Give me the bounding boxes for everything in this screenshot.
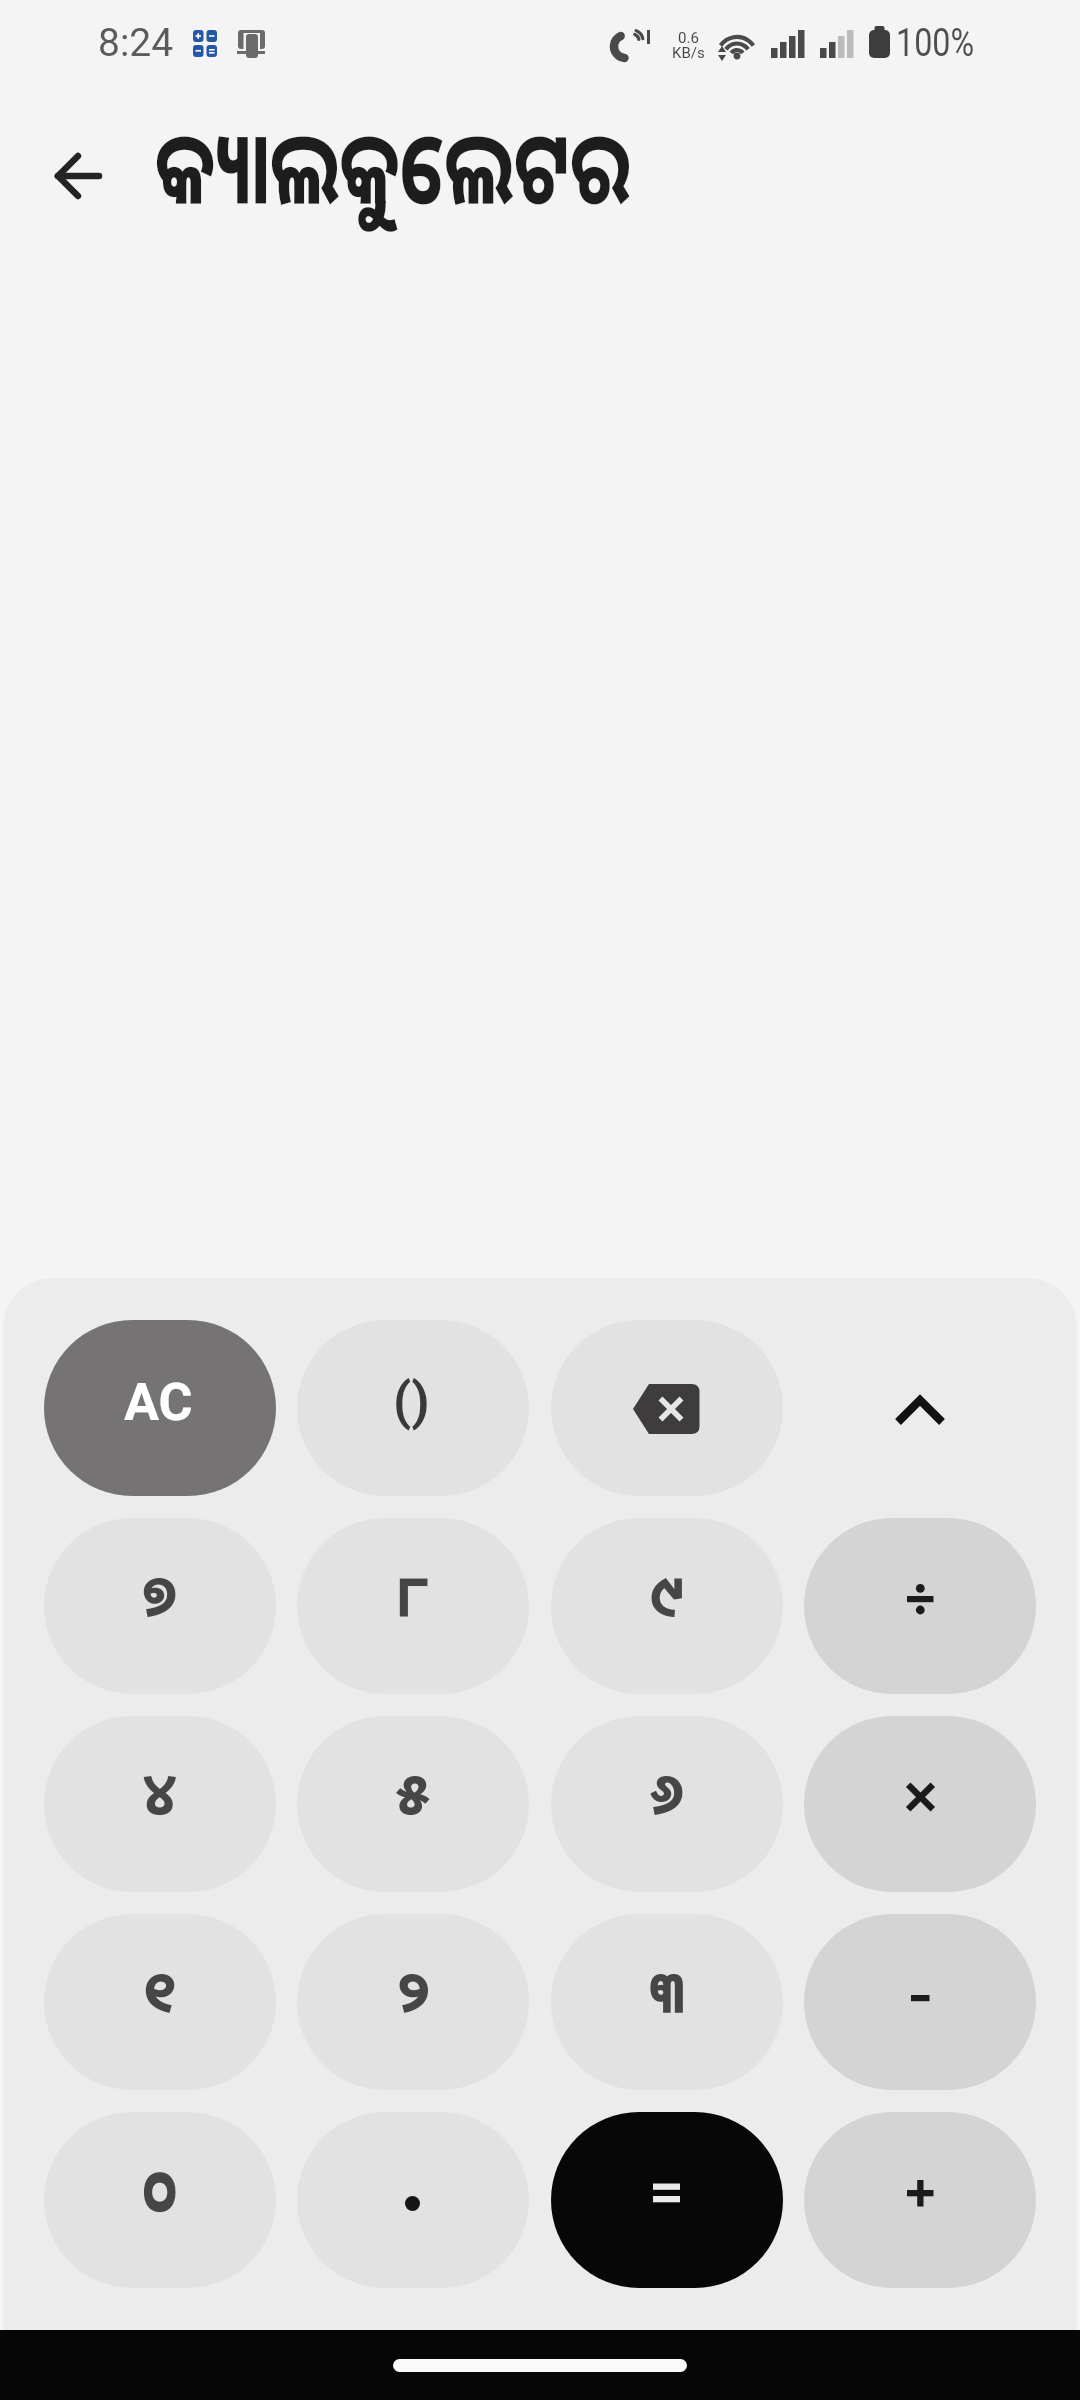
button[interactable]	[44, 1914, 276, 2090]
staticText: ୩	[650, 1956, 684, 2035]
staticText: ୬	[650, 1758, 684, 1837]
staticText: ୫	[396, 1758, 430, 1837]
button[interactable]	[551, 1716, 783, 1892]
button[interactable]	[804, 1518, 1036, 1694]
staticText: 0.6	[678, 29, 699, 44]
staticText: AC	[124, 1372, 193, 1433]
staticText: ୪	[143, 1758, 177, 1837]
button[interactable]	[804, 1320, 1036, 1496]
staticText: ୯	[650, 1560, 684, 1639]
staticText: ୭	[143, 1560, 177, 1639]
button[interactable]	[44, 2112, 276, 2288]
staticText: ୮	[396, 1560, 430, 1639]
staticText: ()	[393, 1371, 430, 1432]
button[interactable]	[297, 2112, 529, 2288]
staticText: ୧	[143, 1956, 177, 2035]
button[interactable]	[551, 1914, 783, 2090]
button[interactable]	[44, 1320, 276, 1496]
button[interactable]	[804, 1716, 1036, 1892]
staticText: KB/s	[672, 44, 705, 59]
staticText: କ୍ୟାଲକୁଲେଟର	[155, 105, 630, 243]
staticText: 8:24	[98, 20, 174, 66]
button[interactable]	[297, 1716, 529, 1892]
button[interactable]	[44, 1518, 276, 1694]
button[interactable]	[551, 1320, 783, 1496]
button[interactable]	[804, 2112, 1036, 2288]
button[interactable]	[804, 1914, 1036, 2090]
button[interactable]	[551, 2112, 783, 2288]
button[interactable]	[38, 136, 118, 216]
button[interactable]	[297, 1914, 529, 2090]
button[interactable]	[44, 1716, 276, 1892]
staticText: 100%	[896, 21, 974, 66]
staticText: ୦	[143, 2139, 177, 2248]
button[interactable]	[297, 1320, 529, 1496]
staticText: ୨	[396, 1956, 431, 2035]
button[interactable]	[551, 1518, 783, 1694]
button[interactable]	[297, 1518, 529, 1694]
